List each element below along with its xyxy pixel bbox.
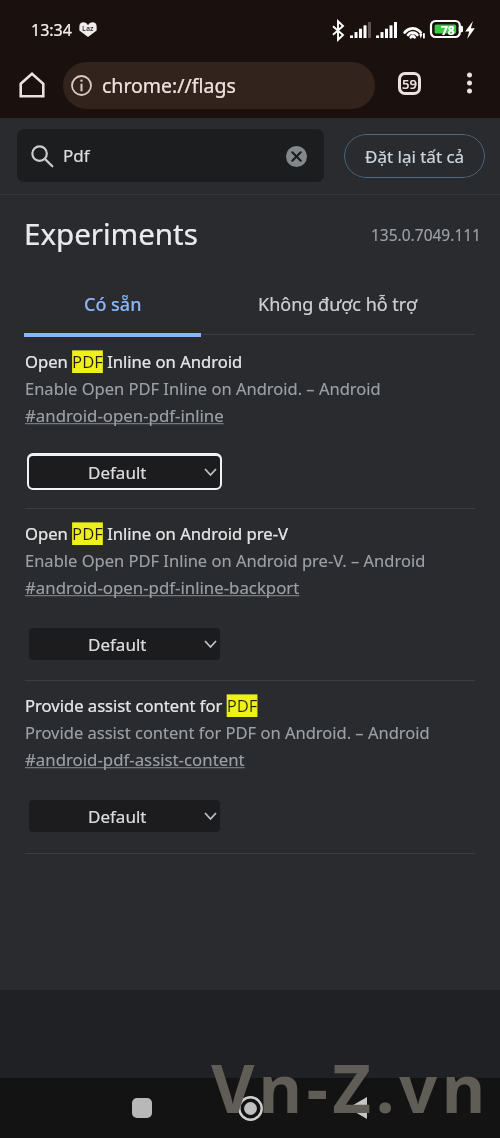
button[interactable]: Recent apps [112, 1078, 172, 1138]
staticText: Open PDF Inline on Android pre-V [25, 522, 288, 545]
button[interactable]: Default [29, 456, 220, 488]
staticText: Provide assist content for PDF [25, 694, 258, 717]
staticText: Đặt lại tất cả [365, 145, 465, 168]
staticText: Có sẵn [84, 292, 142, 317]
staticText: Open PDF Inline on Android [25, 350, 243, 373]
staticText: Provide assist content for PDF on Androi… [25, 721, 430, 743]
staticText: Default [88, 461, 147, 484]
button[interactable]: #android-open-pdf-inline-backport [25, 576, 300, 599]
button[interactable]: Không được hỗ trợ [201, 276, 475, 333]
staticText: 135.0.7049.111 [371, 224, 481, 245]
staticText: Laz [82, 24, 94, 34]
staticText: Experiments [24, 213, 198, 253]
button[interactable]: Pdf [17, 129, 324, 182]
button[interactable]: Đặt lại tất cả [344, 134, 485, 178]
button[interactable]: Home [220, 1078, 280, 1138]
button[interactable]: Default [29, 628, 220, 660]
staticText: Pdf [63, 144, 90, 167]
staticText: Vn-Z.vn [211, 1041, 490, 1132]
button[interactable]: Default [29, 800, 220, 832]
staticText: Default [88, 633, 147, 656]
staticText: Enable Open PDF Inline on Android pre-V.… [25, 549, 426, 571]
staticText: Enable Open PDF Inline on Android. – And… [25, 377, 381, 399]
staticText: chrome://flags [102, 72, 236, 99]
button[interactable]: Back [327, 1078, 387, 1138]
staticText: 13:34 [31, 19, 72, 41]
button[interactable]: Customize and control Chrome [447, 61, 491, 105]
button[interactable]: #android-pdf-assist-content [25, 748, 245, 771]
button[interactable]: Home [9, 62, 55, 108]
staticText: 59 [402, 75, 417, 93]
staticText: Default [88, 805, 147, 828]
button[interactable]: #android-open-pdf-inline [25, 404, 224, 427]
button[interactable]: Có sẵn [24, 276, 201, 333]
button[interactable]: Clear search [274, 134, 318, 178]
staticText: 78 [441, 22, 455, 38]
staticText: Không được hỗ trợ [258, 292, 418, 317]
button[interactable]: chrome://flags [63, 62, 375, 109]
button[interactable]: Switch or open tabs, 59 tabs [387, 61, 431, 105]
